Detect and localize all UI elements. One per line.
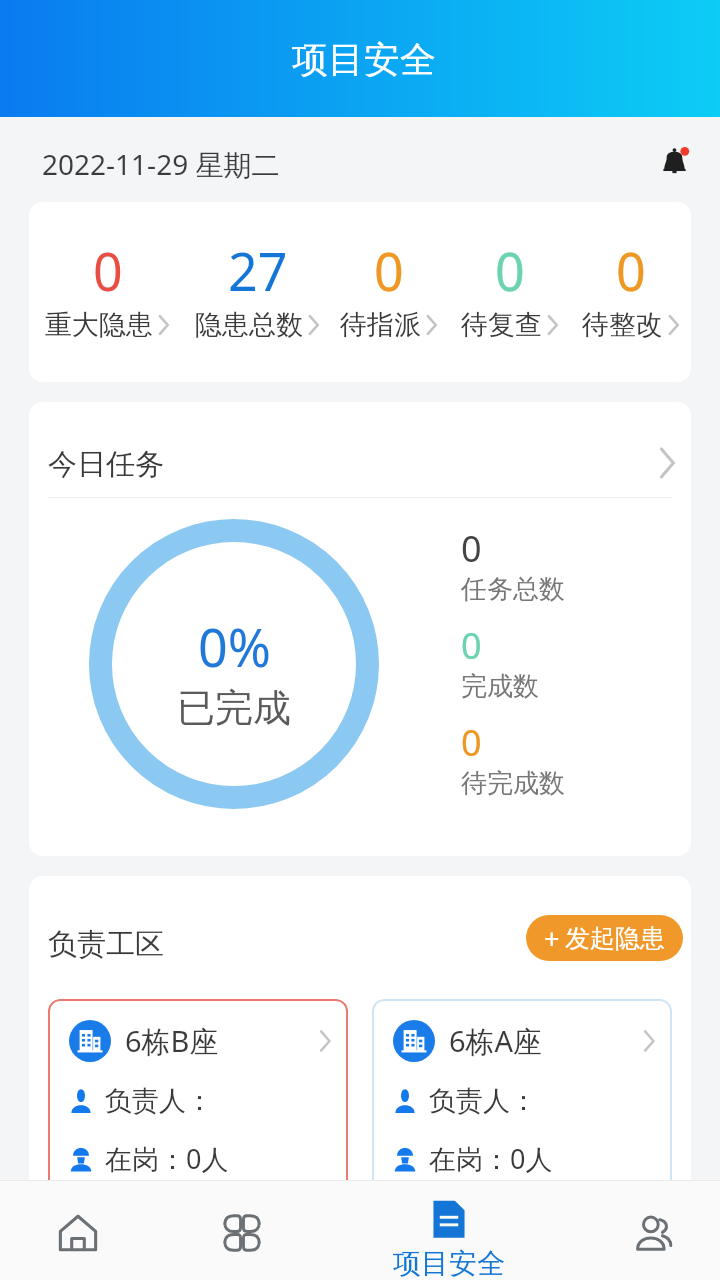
staticText: 0 xyxy=(461,621,482,670)
staticText: 0 xyxy=(616,235,646,306)
staticText: 完成数 xyxy=(461,670,539,703)
button[interactable]: 首页 xyxy=(0,1181,168,1280)
staticText: 27 xyxy=(228,235,288,306)
button[interactable]: 我的 xyxy=(564,1181,720,1280)
staticText: 0% xyxy=(198,611,271,682)
staticText: 0 xyxy=(93,235,123,306)
button[interactable]: 应用 xyxy=(152,1181,332,1280)
staticText: 0 xyxy=(461,524,482,573)
staticText: 待指派 xyxy=(340,308,421,342)
staticText: 6栋A座 xyxy=(449,1021,543,1061)
staticText: 已完成 xyxy=(177,684,291,732)
staticText: 发起隐患 xyxy=(565,923,665,954)
staticText: 0 xyxy=(495,235,525,306)
button[interactable]: 0 xyxy=(449,202,570,382)
button[interactable]: + xyxy=(526,915,683,961)
staticText: 在岗：0人 xyxy=(105,1140,229,1177)
staticText: 6栋B座 xyxy=(125,1021,219,1061)
staticText: 0 xyxy=(374,235,404,306)
staticText: 0 xyxy=(461,718,482,767)
staticText: 重大隐患 xyxy=(45,308,153,342)
staticText: 隐患总数 xyxy=(195,308,303,342)
button[interactable]: Notifications xyxy=(651,134,703,186)
staticText: 2022-11-29 星期二 xyxy=(42,145,280,183)
staticText: 待完成数 xyxy=(461,767,565,800)
staticText: + xyxy=(544,920,560,957)
staticText: 项目安全 xyxy=(393,1246,505,1280)
staticText: 在岗：0人 xyxy=(429,1140,553,1177)
button[interactable]: 0 xyxy=(570,202,691,382)
button[interactable]: 6栋B座 xyxy=(48,999,348,1256)
button[interactable]: 6栋A座 xyxy=(372,999,672,1256)
staticText: 任务总数 xyxy=(461,573,565,606)
staticText: 负责人： xyxy=(105,1084,213,1118)
staticText: 待整改 xyxy=(582,308,663,342)
staticText: 项目安全 xyxy=(292,37,436,82)
button[interactable]: 27 xyxy=(186,202,328,382)
staticText: 今日任务 xyxy=(48,446,164,483)
button[interactable]: 项目安全 xyxy=(359,1181,539,1280)
staticText: 负责工区 xyxy=(48,926,164,963)
button[interactable]: 0 xyxy=(328,202,449,382)
button[interactable]: 今日任务 xyxy=(29,402,691,497)
button[interactable]: 0 xyxy=(29,202,186,382)
staticText: 负责人： xyxy=(429,1084,537,1118)
staticText: 待复查 xyxy=(461,308,542,342)
